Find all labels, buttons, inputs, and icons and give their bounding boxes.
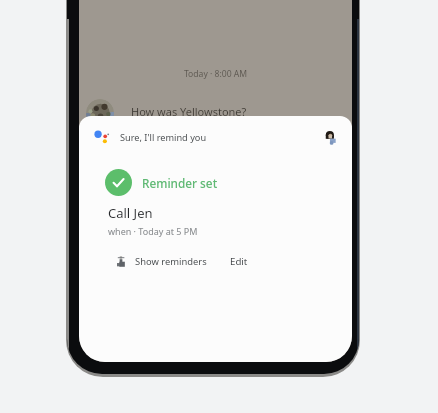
staticText: Reminder set	[142, 175, 218, 191]
staticText: How was Yellowstone?	[131, 104, 247, 119]
staticText: Today · 8:00 AM	[79, 68, 352, 80]
staticText: when · Today at 5 PM	[108, 225, 198, 237]
button[interactable]: Show reminders	[111, 249, 207, 274]
staticText: Sure, I'll remind you	[120, 131, 207, 144]
other: Google Assistant	[94, 130, 109, 145]
button[interactable]: Edit	[224, 249, 254, 274]
staticText: Edit	[230, 255, 248, 268]
staticText: Show reminders	[135, 255, 207, 268]
staticText: Call Jen	[108, 204, 153, 222]
